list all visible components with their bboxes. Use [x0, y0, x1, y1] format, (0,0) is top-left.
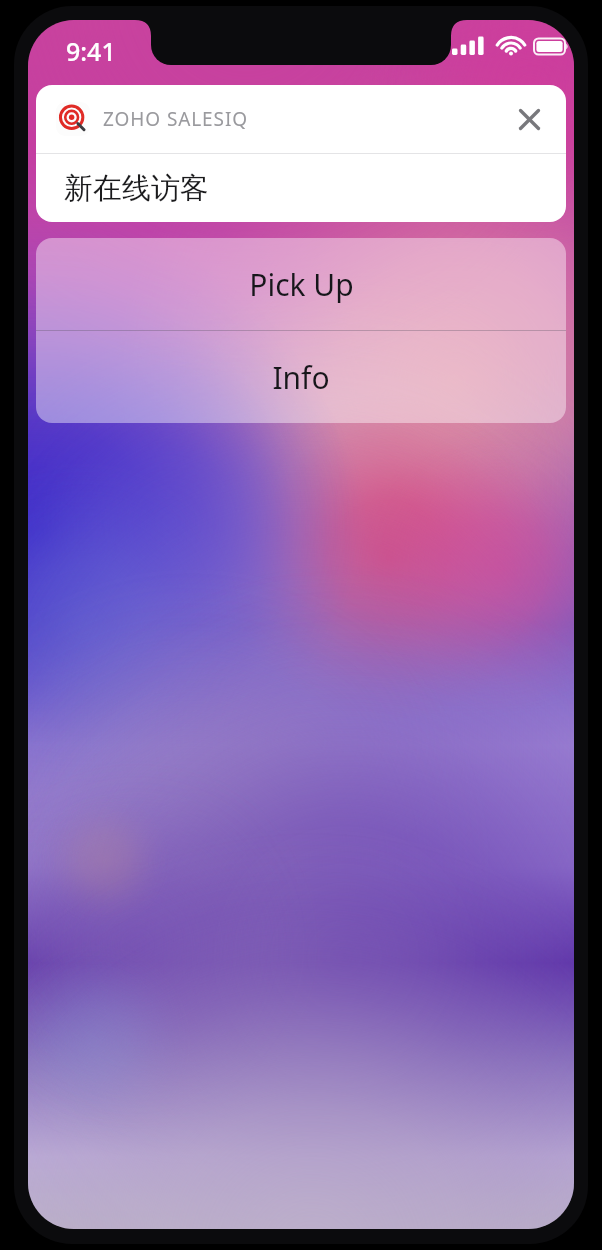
- button[interactable]: Info: [36, 331, 566, 423]
- button[interactable]: ZOHO SALESIQ: [36, 85, 566, 153]
- staticText: 新在线访客: [64, 170, 209, 207]
- button[interactable]: 新在线访客: [36, 154, 566, 222]
- button[interactable]: Pick Up: [36, 238, 566, 330]
- staticText: Pick Up: [249, 264, 354, 305]
- button[interactable]: Dismiss notification: [510, 100, 548, 138]
- staticText: ZOHO SALESIQ: [103, 106, 248, 132]
- staticText: Info: [272, 357, 330, 398]
- staticText: 9:41: [66, 34, 116, 68]
